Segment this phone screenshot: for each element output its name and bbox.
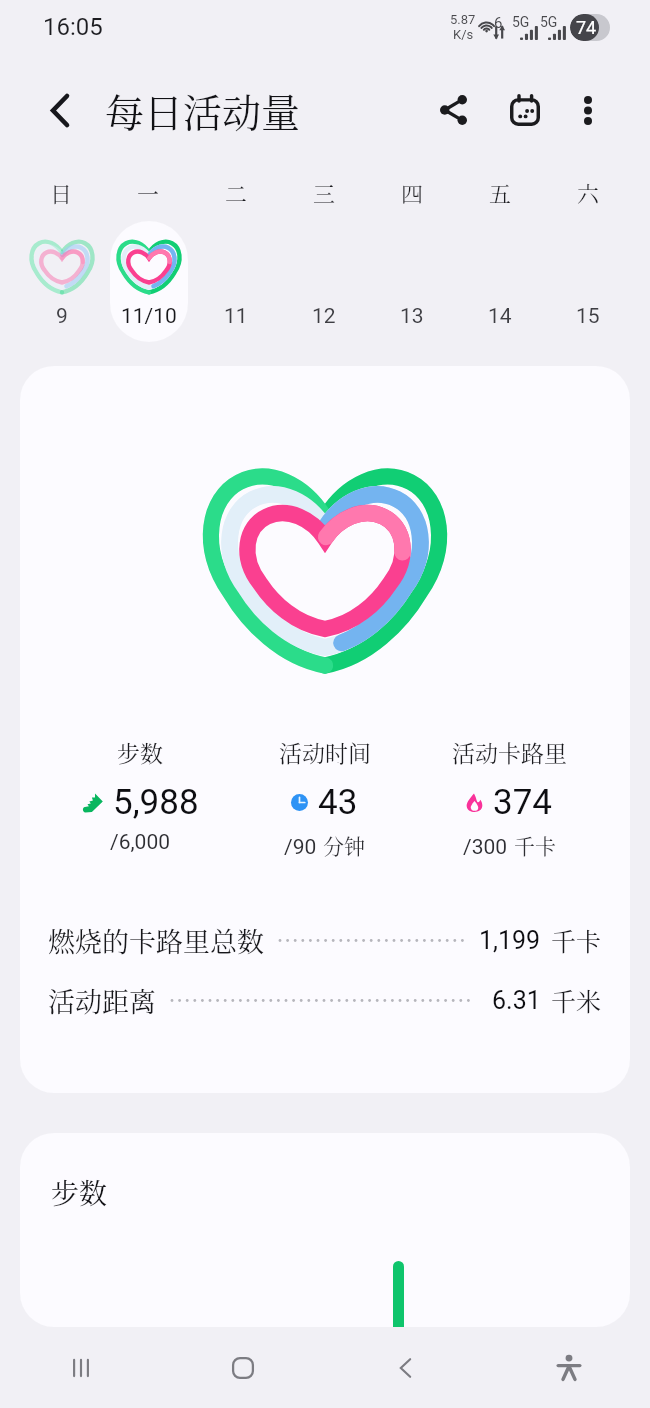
staticText: 5,988 (113, 782, 199, 823)
staticText: 6.31 (492, 986, 541, 1015)
button[interactable]: 四 (368, 160, 456, 366)
button[interactable]: 六 (544, 160, 632, 366)
staticText: /6,000 (110, 830, 171, 855)
button[interactable]: 五 (456, 160, 544, 366)
button[interactable]: 活动距离 (48, 971, 602, 1029)
staticText: 二 (225, 177, 248, 209)
staticText: 5.87 (450, 12, 476, 27)
staticText: /300 (463, 835, 508, 860)
staticText: 5G (540, 14, 558, 30)
staticText: 千卡 (514, 830, 556, 860)
staticText: 14 (488, 304, 512, 329)
staticText: 16:05 (43, 13, 103, 41)
button[interactable]: 燃烧的卡路里总数 (48, 911, 602, 969)
staticText: 每日活动量 (105, 82, 301, 138)
staticText: /90 (284, 835, 317, 860)
staticText: 43 (318, 782, 358, 823)
staticText: 374 (493, 782, 553, 823)
staticText: K/s (453, 27, 474, 42)
button[interactable]: Back (324, 1327, 487, 1408)
staticText: 5G (512, 14, 530, 30)
button[interactable]: More options (554, 76, 622, 144)
staticText: 千米 (551, 982, 602, 1018)
staticText: 四 (401, 177, 424, 209)
staticText: 五 (489, 177, 512, 209)
button[interactable]: Accessibility (487, 1327, 650, 1408)
button[interactable]: 活动卡路里 (417, 736, 602, 860)
button[interactable]: Back (26, 76, 94, 144)
staticText: 13 (400, 304, 424, 329)
staticText: 千卡 (551, 922, 602, 958)
button[interactable]: 日 (18, 160, 105, 366)
button[interactable]: Home (162, 1327, 324, 1408)
button[interactable]: 步数 (48, 736, 232, 855)
staticText: 步数 (51, 1172, 108, 1212)
staticText: 12 (312, 304, 336, 329)
button[interactable]: Recents (0, 1327, 162, 1408)
staticText: 三 (313, 177, 336, 209)
staticText: 9 (56, 304, 68, 329)
button[interactable]: Calendar (491, 76, 559, 144)
staticText: 15 (576, 304, 600, 329)
staticText: 活动距离 (48, 981, 156, 1020)
button[interactable]: 一 (105, 160, 192, 366)
staticText: 1,199 (479, 926, 541, 955)
staticText: 活动时间 (279, 736, 371, 769)
staticText: 74 (576, 17, 597, 38)
staticText: 11 (224, 304, 248, 329)
staticText: 六 (577, 177, 600, 209)
staticText: 燃烧的卡路里总数 (48, 921, 264, 960)
staticText: 6 (494, 14, 503, 32)
button[interactable]: 三 (280, 160, 368, 366)
staticText: 活动卡路里 (452, 736, 567, 769)
staticText: 日 (50, 177, 73, 209)
button[interactable]: 二 (192, 160, 280, 366)
staticText: 分钟 (323, 830, 365, 860)
staticText: 11/10 (121, 304, 177, 329)
button[interactable]: Share (419, 76, 487, 144)
button[interactable]: 活动时间 (232, 736, 417, 860)
staticText: 一 (137, 177, 160, 209)
staticText: 步数 (117, 736, 163, 769)
